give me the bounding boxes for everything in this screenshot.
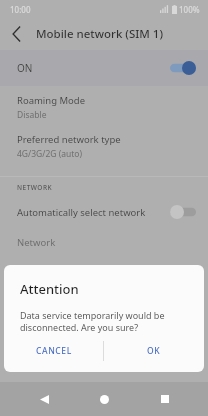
staticText: Disable	[17, 109, 47, 121]
button[interactable]: Home	[87, 382, 121, 416]
staticText: Automatically select network	[17, 206, 146, 219]
staticText: Preferred network type	[17, 133, 121, 146]
button[interactable]: Roaming Mode	[0, 94, 208, 121]
staticText: CANCEL	[36, 345, 72, 357]
staticText: 10:00	[10, 4, 31, 15]
button[interactable]: Back	[0, 18, 32, 50]
button[interactable]: CANCEL	[4, 334, 103, 368]
button[interactable]: Recent apps	[148, 382, 182, 416]
staticText: Roaming Mode	[17, 94, 86, 107]
staticText: Attention	[20, 280, 79, 298]
button[interactable]: Back	[27, 382, 61, 416]
button[interactable]: ON	[0, 50, 208, 86]
staticText: NETWORK	[17, 183, 53, 192]
staticText: ON	[17, 61, 33, 75]
staticText: OK	[147, 345, 161, 357]
button[interactable]: Preferred network type	[0, 133, 208, 160]
staticText: Data service temporarily would be discon…	[20, 309, 188, 334]
button[interactable]: Automatically select network	[0, 197, 208, 227]
staticText: 100%	[179, 4, 200, 15]
staticText: 4G/3G/2G (auto)	[17, 148, 83, 160]
staticText: Mobile network (SIM 1)	[36, 26, 164, 42]
button[interactable]: OK	[104, 334, 204, 368]
button[interactable]: Network	[0, 233, 208, 251]
staticText: Network	[17, 236, 56, 249]
